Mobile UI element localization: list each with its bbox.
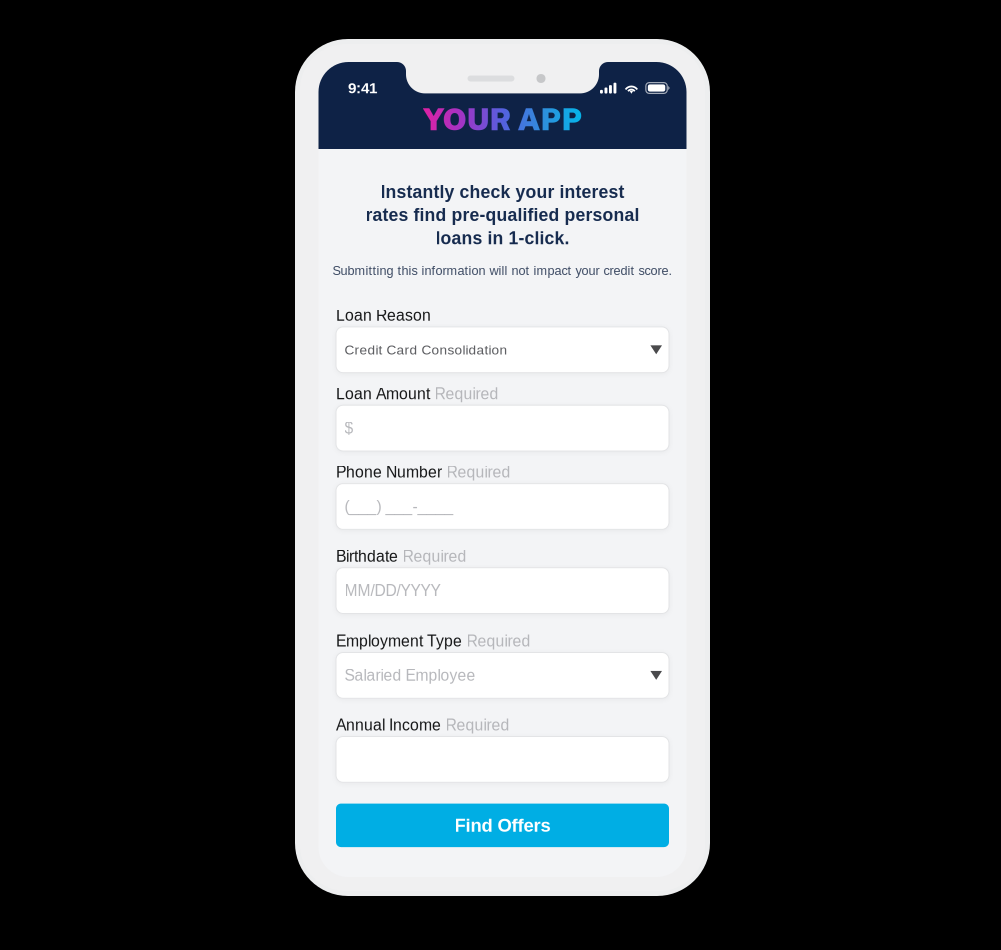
button[interactable]: (___) ___-____: [336, 484, 669, 529]
button[interactable]: Credit Card Consolidation: [336, 327, 669, 373]
staticText: Required: [445, 716, 509, 734]
staticText: Phone Number: [336, 463, 442, 481]
staticText: Loan Reason: [336, 307, 431, 324]
staticText: Find Offers: [454, 815, 550, 836]
button[interactable]: Salaried Employee: [336, 652, 669, 698]
staticText: Salaried Employee: [344, 667, 475, 684]
staticText: Submitting this information will not imp…: [332, 263, 672, 278]
staticText: MM/DD/YYYY: [344, 582, 440, 599]
staticText: rates find pre-qualified personal: [365, 205, 639, 225]
staticText: Annual Income: [336, 716, 441, 734]
button[interactable]: [336, 736, 669, 782]
staticText: Instantly check your interest: [380, 182, 624, 202]
staticText: Required: [402, 547, 466, 565]
staticText: Employment Type: [336, 632, 462, 650]
staticText: Required: [434, 385, 498, 402]
staticText: loans in 1-click.: [435, 228, 569, 248]
button[interactable]: $: [336, 405, 669, 451]
button[interactable]: Find Offers: [336, 804, 669, 847]
staticText: (___) ___-____: [344, 498, 453, 515]
staticText: $: [344, 419, 353, 437]
staticText: Credit Card Consolidation: [344, 342, 507, 357]
staticText: 9:41: [348, 79, 377, 96]
staticText: Birthdate: [336, 547, 398, 565]
staticText: Required: [466, 632, 530, 650]
staticText: Required: [446, 463, 510, 481]
staticText: Loan Amount: [336, 385, 430, 402]
button[interactable]: MM/DD/YYYY: [336, 568, 669, 613]
